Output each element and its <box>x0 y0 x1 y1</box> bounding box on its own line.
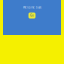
staticText: Welcome back <box>23 6 41 9</box>
button[interactable]: Go <box>28 12 35 18</box>
staticText: Go <box>30 14 34 17</box>
